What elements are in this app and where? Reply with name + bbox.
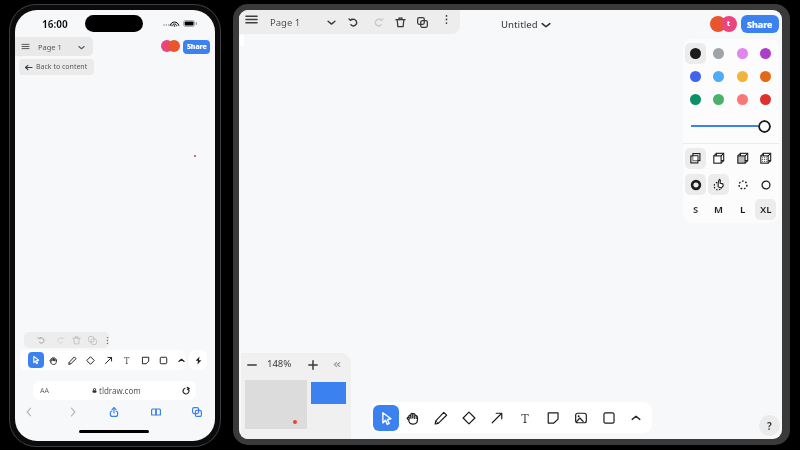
button[interactable]: Undo [344, 10, 362, 34]
button[interactable]: Image [567, 404, 595, 432]
button[interactable]: Duplicate [413, 10, 431, 34]
button[interactable]: Share [741, 15, 779, 33]
button[interactable]: More tools [623, 405, 649, 431]
button[interactable]: Colour [732, 43, 753, 64]
button[interactable]: Quick actions [189, 350, 207, 370]
button[interactable]: More [437, 10, 455, 28]
button[interactable]: Colour [732, 66, 753, 87]
button[interactable]: Colour [755, 43, 776, 64]
button[interactable]: Tabs [188, 403, 206, 421]
staticText: 16:00 [42, 17, 68, 31]
button[interactable]: Colour [685, 43, 706, 64]
button[interactable]: 148% [267, 357, 292, 370]
button[interactable]: Share [105, 403, 123, 421]
button[interactable]: Dash style [755, 174, 776, 195]
button[interactable]: Dash style [732, 174, 753, 195]
staticText: Share [747, 18, 773, 30]
staticText: M [714, 203, 723, 216]
staticText: Page 1 [270, 16, 301, 29]
staticText: ? [767, 419, 772, 433]
staticText: T [124, 354, 130, 366]
staticText: XL [760, 203, 772, 216]
button[interactable]: Colour [755, 66, 776, 87]
button[interactable]: Undo [34, 333, 48, 347]
button[interactable]: Duplicate [85, 333, 99, 347]
button[interactable]: Page 1 [265, 10, 339, 34]
staticText: Back to content [36, 62, 88, 72]
button[interactable]: Colour [732, 89, 753, 110]
button[interactable]: Bookmarks [147, 403, 165, 421]
button[interactable]: Hand [399, 404, 427, 432]
button[interactable]: XL [755, 199, 776, 220]
staticText: Share [187, 42, 207, 52]
button[interactable]: Shape [595, 404, 623, 432]
button[interactable]: Arrow [483, 404, 511, 432]
button[interactable]: Redo [53, 333, 67, 347]
staticText: S [693, 203, 699, 216]
staticText: Page 1 [38, 42, 62, 52]
button[interactable]: Hand [46, 353, 60, 367]
button[interactable]: Select tool [28, 352, 44, 368]
button[interactable]: Text [511, 404, 539, 432]
button[interactable]: L [732, 199, 753, 220]
staticText: T [521, 409, 529, 427]
staticText: tldraw.com [99, 385, 141, 396]
button[interactable]: Menu [242, 10, 260, 28]
button[interactable]: Help [759, 415, 780, 436]
button[interactable]: Draw [65, 353, 79, 367]
button[interactable]: Note [138, 353, 152, 367]
button[interactable]: Redo [369, 10, 387, 34]
button[interactable]: Zoom out [246, 359, 257, 370]
button[interactable]: Fill style [755, 148, 776, 169]
button[interactable]: Note [539, 404, 567, 432]
button[interactable]: Select tool [373, 405, 399, 431]
button[interactable]: Back [20, 403, 38, 421]
button[interactable]: Fill style [685, 148, 706, 169]
button[interactable]: Collapse [331, 359, 342, 370]
button[interactable]: Text [120, 350, 134, 370]
button[interactable]: Zoom in [307, 359, 318, 370]
button[interactable]: Forward [64, 403, 82, 421]
button[interactable]: Fill style [708, 148, 729, 169]
button[interactable]: Colour [708, 66, 729, 87]
button[interactable]: More tools [174, 350, 185, 370]
button[interactable]: AA [33, 381, 196, 400]
button[interactable]: Shape [156, 353, 170, 367]
staticText: 148% [267, 357, 292, 370]
button[interactable]: Untitled [497, 14, 553, 36]
staticText: Untitled [501, 18, 538, 31]
button[interactable]: Arrow [101, 353, 115, 367]
button[interactable]: Delete [391, 10, 409, 34]
button[interactable]: S [685, 199, 706, 220]
button[interactable]: Colour [708, 89, 729, 110]
button[interactable]: Share [183, 40, 210, 54]
button[interactable]: Colour [685, 66, 706, 87]
button[interactable]: Colour [708, 43, 729, 64]
staticText: AA [40, 386, 49, 396]
button[interactable]: Delete [69, 333, 83, 347]
staticText: t [727, 19, 731, 29]
button[interactable]: Dash style [685, 174, 706, 195]
button[interactable]: Back to content [19, 59, 94, 75]
button[interactable]: Draw [427, 404, 455, 432]
button[interactable]: Page 1 [15, 37, 93, 56]
button[interactable]: Eraser [455, 404, 483, 432]
staticText: L [740, 203, 746, 216]
button[interactable]: Colour [755, 89, 776, 110]
button[interactable]: Fill style [732, 148, 753, 169]
button[interactable]: Dash style [708, 174, 729, 195]
button[interactable]: More [100, 333, 109, 347]
button[interactable]: Eraser [83, 353, 97, 367]
button[interactable]: M [708, 199, 729, 220]
button[interactable]: Colour [685, 89, 706, 110]
